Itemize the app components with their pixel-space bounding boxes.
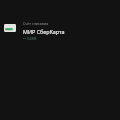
staticText: МИР СберКарта [23, 28, 65, 35]
staticText: •• 0488 [23, 36, 37, 41]
staticText: Счёт списания [23, 21, 49, 26]
button[interactable]: Card [4, 21, 65, 41]
